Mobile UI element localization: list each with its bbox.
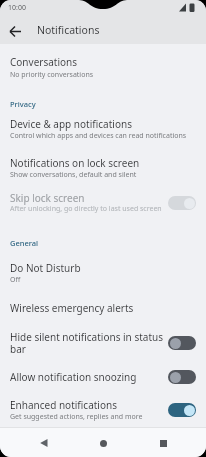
staticText: No priority conversations: [10, 70, 94, 80]
staticText: Privacy: [10, 99, 36, 109]
staticText: Do Not Disturb: [10, 261, 81, 275]
staticText: Hide silent notifications in status: [10, 330, 163, 344]
staticText: Device & app notifications: [10, 117, 132, 131]
button[interactable]: [0, 392, 206, 428]
button[interactable]: [0, 254, 206, 292]
staticText: Notifications on lock screen: [10, 156, 140, 170]
staticText: Allow notification snoozing: [10, 370, 137, 384]
button[interactable]: [0, 360, 206, 386]
button[interactable]: [0, 148, 206, 186]
staticText: bar: [10, 342, 26, 356]
staticText: Notifications: [37, 23, 100, 37]
button[interactable]: [95, 435, 111, 451]
button[interactable]: [4, 20, 26, 42]
staticText: 10:00: [8, 3, 26, 13]
staticText: General: [10, 238, 39, 248]
button[interactable]: [0, 186, 206, 220]
staticText: Wireless emergency alerts: [10, 301, 134, 315]
button[interactable]: [0, 294, 206, 322]
button[interactable]: [0, 322, 206, 360]
staticText: Skip lock screen: [10, 191, 85, 205]
button[interactable]: [36, 435, 52, 451]
button[interactable]: [155, 435, 171, 451]
button[interactable]: [0, 48, 206, 88]
staticText: Get suggested actions, replies and more: [10, 412, 143, 422]
staticText: After unlocking, go directly to last use…: [10, 204, 162, 214]
staticText: Off: [10, 275, 21, 285]
staticText: Show conversations, default and silent: [10, 170, 137, 180]
button[interactable]: [0, 112, 206, 148]
staticText: Control which apps and devices can read …: [10, 131, 187, 141]
staticText: Conversations: [10, 55, 78, 69]
staticText: Enhanced notifications: [10, 398, 117, 412]
